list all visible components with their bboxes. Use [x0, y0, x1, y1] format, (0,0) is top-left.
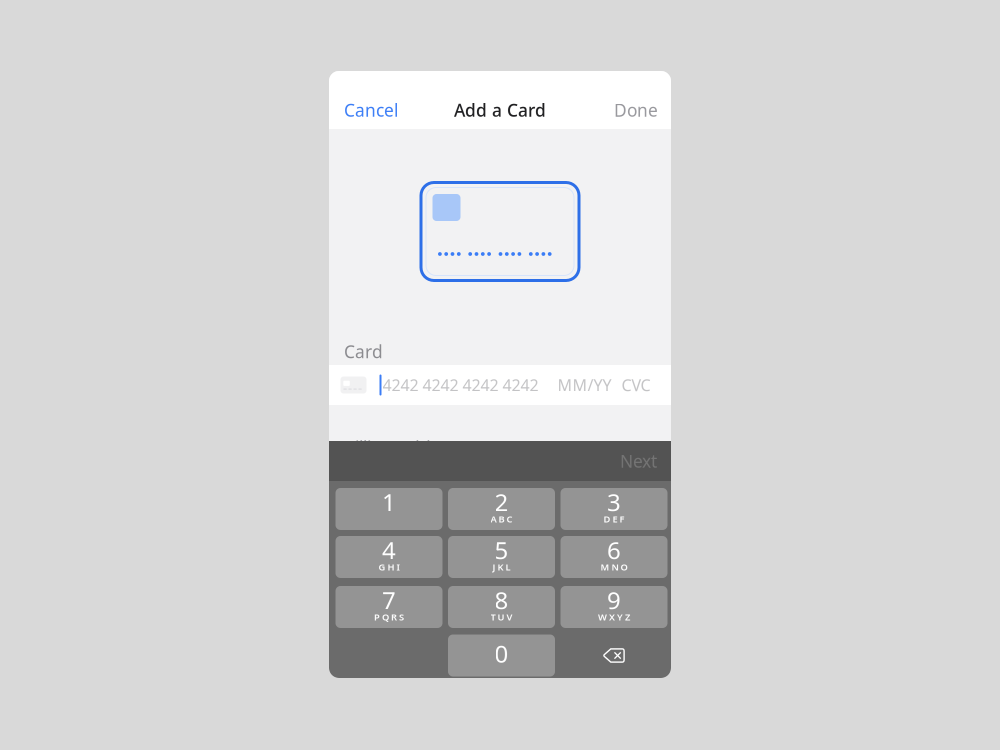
- staticText: 6: [607, 534, 621, 566]
- staticText: Card: [344, 340, 383, 363]
- staticText: MM/YY: [557, 374, 611, 396]
- staticText: P Q R S: [374, 611, 404, 623]
- button[interactable]: Done: [602, 95, 671, 125]
- staticText: Done: [614, 98, 658, 121]
- button[interactable]: 1: [335, 488, 442, 530]
- button[interactable]: Delete: [560, 634, 667, 676]
- button[interactable]: 4242 4242 4242 4242: [329, 365, 671, 405]
- button[interactable]: 0: [448, 634, 555, 676]
- staticText: Cancel: [344, 98, 398, 121]
- button[interactable]: 8: [448, 586, 555, 628]
- staticText: 9: [607, 584, 621, 616]
- staticText: 7: [382, 584, 396, 616]
- staticText: 8: [494, 584, 508, 616]
- staticText: CVC: [621, 374, 650, 396]
- staticText: T U V: [490, 611, 512, 623]
- button[interactable]: 7: [335, 586, 442, 628]
- button[interactable]: Cancel: [329, 95, 410, 125]
- staticText: A B C: [490, 513, 512, 525]
- staticText: G H I: [378, 561, 399, 573]
- button[interactable]: Next: [605, 441, 671, 481]
- staticText: Next: [620, 449, 657, 472]
- staticText: M N O: [600, 561, 627, 573]
- staticText: J K L: [492, 561, 510, 573]
- staticText: D E F: [603, 513, 624, 525]
- staticText: 0: [494, 638, 508, 669]
- staticText: 4242 4242 4242 4242: [382, 374, 538, 396]
- staticText: W X Y Z: [598, 611, 630, 623]
- staticText: 1: [382, 486, 396, 518]
- button[interactable]: 3: [560, 488, 667, 530]
- button[interactable]: 5: [448, 536, 555, 578]
- staticText: Billing Address: [344, 436, 464, 459]
- staticText: 4: [382, 534, 396, 566]
- staticText: 5: [494, 534, 508, 566]
- button[interactable]: 6: [560, 536, 667, 578]
- staticText: 3: [607, 486, 621, 518]
- staticText: Add a Card: [454, 98, 546, 121]
- button[interactable]: 2: [448, 488, 555, 530]
- button[interactable]: 4: [335, 536, 442, 578]
- staticText: 2: [494, 486, 508, 518]
- button[interactable]: 9: [560, 586, 667, 628]
